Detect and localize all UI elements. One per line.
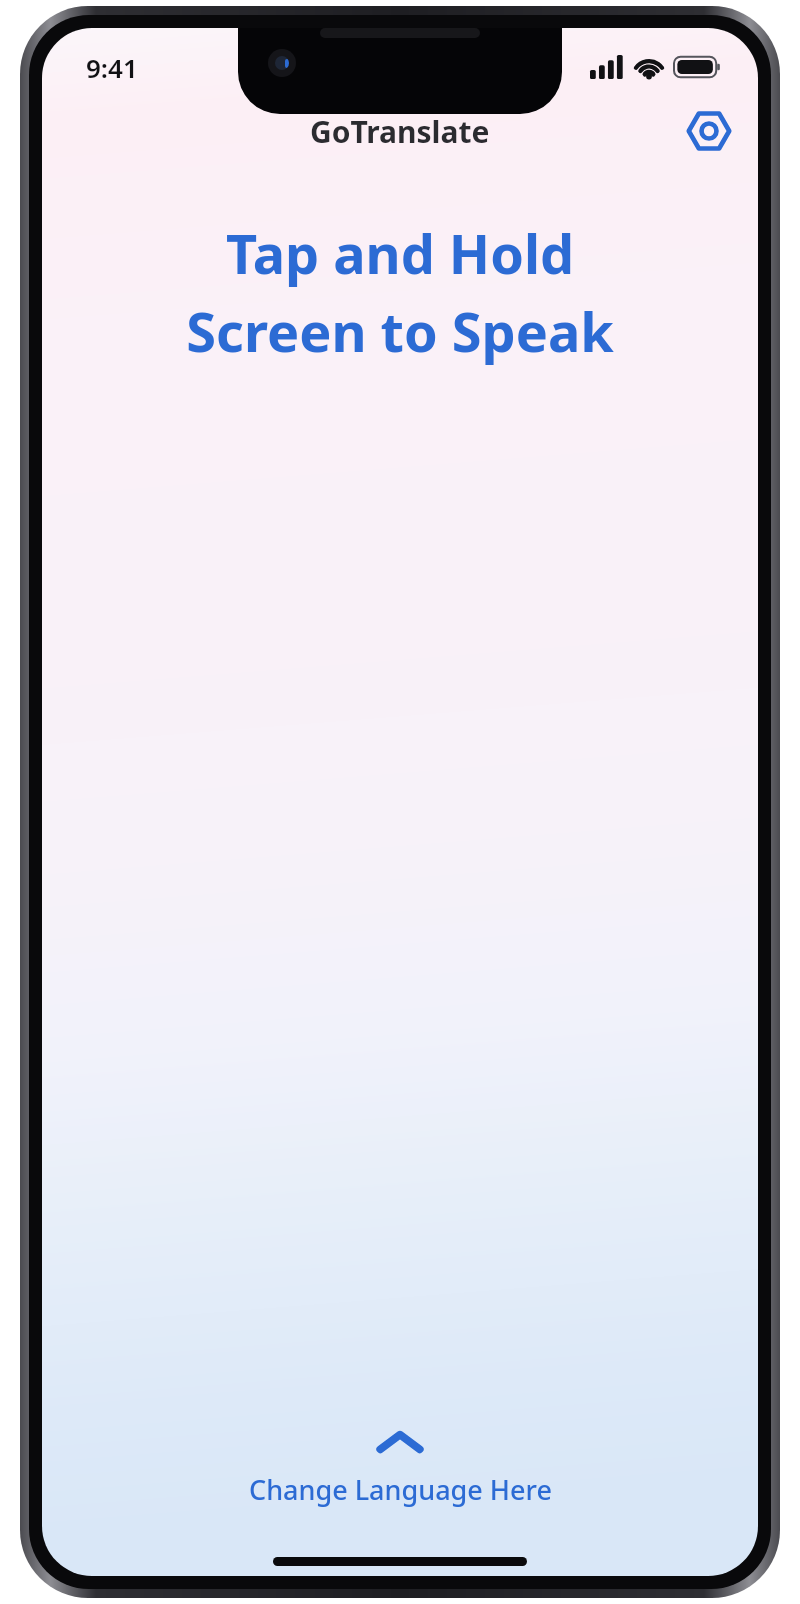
- staticText: 9:41: [86, 50, 138, 85]
- button[interactable]: [42, 368, 758, 1429]
- staticText: Tap and Hold Screen to Speak: [66, 216, 734, 368]
- staticText: Change Language Here: [249, 1471, 552, 1508]
- button[interactable]: Change Language Here: [42, 1429, 758, 1508]
- staticText: GoTranslate: [310, 111, 490, 152]
- button[interactable]: Settings: [682, 104, 736, 158]
